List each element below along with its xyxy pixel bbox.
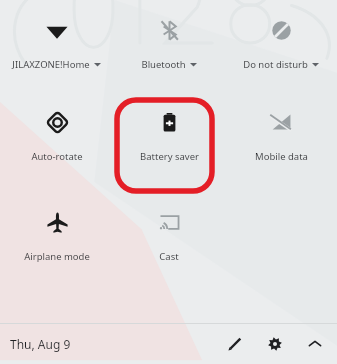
staticText: Airplane mode [24, 250, 90, 263]
staticText: Auto-rotate [31, 150, 83, 163]
button[interactable]: Cast [113, 192, 225, 282]
staticText: Mobile data [255, 150, 308, 163]
button[interactable]: Mobile data [225, 92, 337, 192]
button[interactable]: Collapse quick settings [301, 330, 329, 358]
staticText: Thu, Aug 9 [10, 336, 71, 352]
button[interactable]: Bluetooth [113, 0, 225, 92]
button[interactable]: Battery saver [113, 92, 225, 192]
button[interactable]: Edit [221, 330, 249, 358]
staticText: JILAXZONE!Home [12, 58, 90, 71]
button[interactable]: JILAXZONE!Home [0, 0, 113, 92]
staticText: Do not disturb [243, 58, 308, 71]
button[interactable]: Airplane mode [0, 192, 113, 282]
staticText: Battery saver [140, 150, 199, 163]
button[interactable]: Do not disturb [225, 0, 337, 92]
staticText: Bluetooth [141, 58, 186, 71]
button[interactable]: Auto-rotate [0, 92, 113, 192]
button[interactable]: Settings [261, 330, 289, 358]
staticText: Cast [159, 250, 179, 263]
